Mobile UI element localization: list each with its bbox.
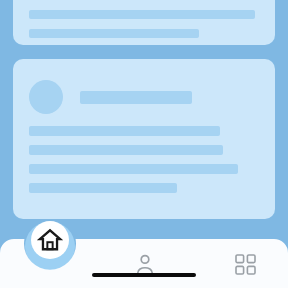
button[interactable] <box>13 0 275 45</box>
button[interactable]: Home <box>31 221 69 259</box>
button[interactable] <box>13 59 275 219</box>
button[interactable]: Apps <box>227 246 263 282</box>
button[interactable]: Profile <box>127 246 163 282</box>
